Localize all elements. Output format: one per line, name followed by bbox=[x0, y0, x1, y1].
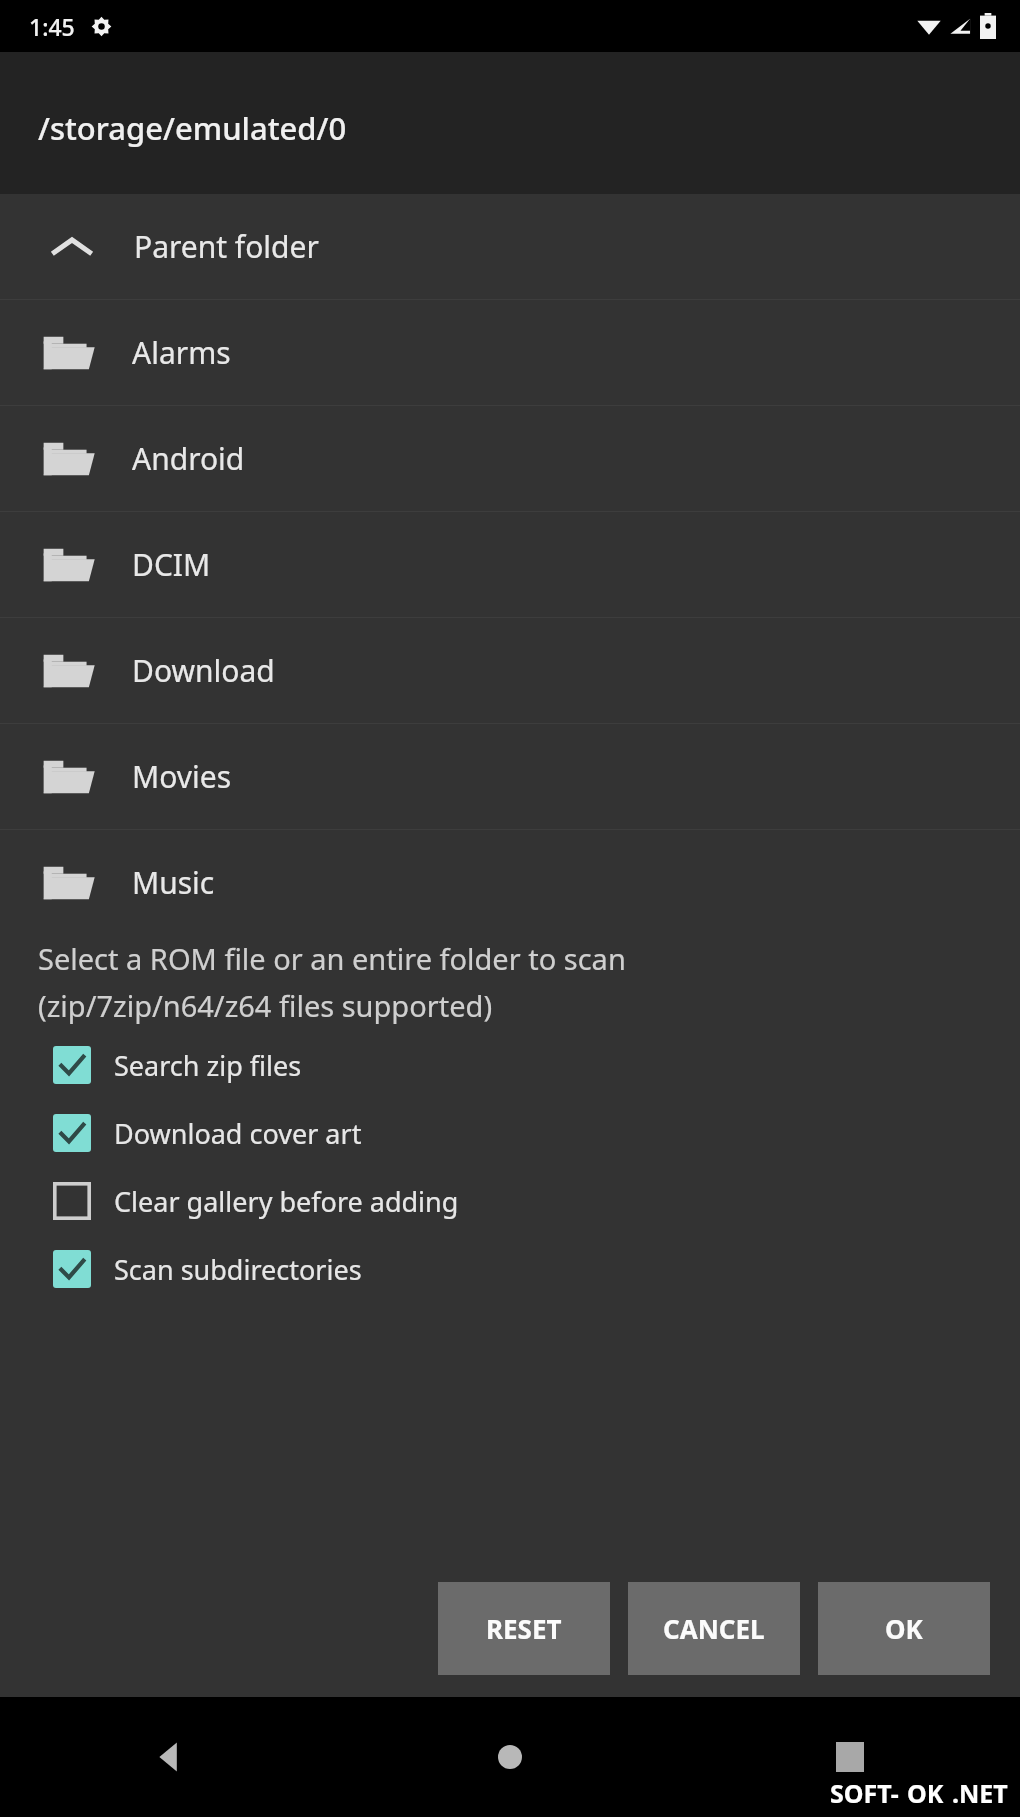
staticText: (zip/7zip/n64/z64 files supported) bbox=[38, 986, 493, 1025]
staticText: Music bbox=[132, 862, 215, 903]
staticText: Clear gallery before adding bbox=[114, 1183, 459, 1220]
button[interactable]: DCIM bbox=[0, 512, 1020, 617]
staticText: OK bbox=[907, 1776, 944, 1810]
staticText: .NET bbox=[952, 1776, 1008, 1810]
button[interactable]: Alarms bbox=[0, 300, 1020, 405]
staticText: Android bbox=[132, 438, 245, 479]
button[interactable]: Download bbox=[0, 618, 1020, 723]
button[interactable]: Clear gallery before adding bbox=[0, 1167, 1020, 1235]
button[interactable]: Android bbox=[0, 406, 1020, 511]
button[interactable]: Back bbox=[0, 1697, 340, 1817]
staticText: /storage/emulated/0 bbox=[38, 107, 347, 149]
button[interactable]: RESET bbox=[438, 1582, 610, 1675]
button[interactable]: Parent folder bbox=[0, 194, 1020, 299]
staticText: Movies bbox=[132, 756, 232, 797]
button[interactable]: Search zip files bbox=[0, 1031, 1020, 1099]
staticText: DCIM bbox=[132, 544, 211, 585]
staticText: Search zip files bbox=[114, 1047, 302, 1084]
button[interactable]: Home bbox=[340, 1697, 680, 1817]
staticText: Select a ROM file or an entire folder to… bbox=[38, 939, 626, 978]
button[interactable]: Recent apps bbox=[680, 1697, 1020, 1817]
staticText: CANCEL bbox=[663, 1611, 765, 1646]
staticText: Download bbox=[132, 650, 275, 691]
staticText: RESET bbox=[486, 1611, 562, 1646]
staticText: Alarms bbox=[132, 332, 231, 373]
button[interactable]: CANCEL bbox=[628, 1582, 800, 1675]
button[interactable]: Music bbox=[0, 830, 1020, 935]
staticText: Scan subdirectories bbox=[114, 1251, 362, 1288]
button[interactable]: Movies bbox=[0, 724, 1020, 829]
staticText: Parent folder bbox=[134, 226, 319, 267]
button[interactable]: Scan subdirectories bbox=[0, 1235, 1020, 1303]
staticText: Download cover art bbox=[114, 1115, 362, 1152]
staticText: OK bbox=[885, 1611, 923, 1646]
button[interactable]: OK bbox=[818, 1582, 990, 1675]
staticText: 1:45 bbox=[29, 11, 75, 42]
staticText: SOFT- bbox=[830, 1776, 899, 1810]
button[interactable]: Download cover art bbox=[0, 1099, 1020, 1167]
